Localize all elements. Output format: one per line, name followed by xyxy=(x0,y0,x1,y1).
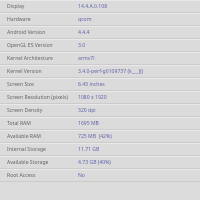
staticText: Hardware xyxy=(7,16,31,23)
button[interactable]: Screen Density xyxy=(0,104,200,117)
staticText: 6.45 inches xyxy=(78,81,105,88)
staticText: Android Version xyxy=(7,29,46,36)
button[interactable]: Screen Size xyxy=(0,78,200,91)
staticText: Screen Size xyxy=(7,81,34,88)
button[interactable]: Kernel Version xyxy=(0,65,200,78)
staticText: qcom xyxy=(78,16,92,23)
staticText: Kernel Version xyxy=(7,68,42,75)
button[interactable]: Android Version xyxy=(0,26,200,39)
staticText: OpenGL ES Version xyxy=(7,42,53,49)
staticText: 1695 MB xyxy=(78,120,99,127)
staticText: Screen Resolution (pixels) xyxy=(7,94,68,101)
staticText: Screen Density xyxy=(7,107,43,114)
staticText: No xyxy=(78,172,85,179)
staticText: Display xyxy=(7,3,25,10)
staticText: 4.4.4 xyxy=(78,29,90,36)
staticText: Total RAM xyxy=(7,120,31,127)
staticText: Kernel Architecture xyxy=(7,55,53,62)
button[interactable]: OpenGL ES Version xyxy=(0,39,200,52)
staticText: 11.71 GB xyxy=(78,146,100,153)
button[interactable]: Available RAM xyxy=(0,130,200,143)
staticText: 4.73 GB (40%) xyxy=(78,159,111,166)
staticText: Available Storage xyxy=(7,159,49,166)
button[interactable]: Display xyxy=(0,0,200,13)
button[interactable]: Total RAM xyxy=(0,117,200,130)
button[interactable]: Screen Resolution (pixels) xyxy=(0,91,200,104)
staticText: 320 dpi xyxy=(78,107,96,114)
staticText: 3.4.0-perf-g0109737 (k___)() xyxy=(78,68,144,75)
staticText: Available RAM xyxy=(7,133,41,140)
staticText: armv7l xyxy=(78,55,95,62)
button[interactable]: Hardware xyxy=(0,13,200,26)
staticText: 725 MB (42%) xyxy=(78,133,112,140)
staticText: Root Access xyxy=(7,172,36,179)
staticText: 3.0 xyxy=(78,42,86,49)
staticText: Internal Storage xyxy=(7,146,46,153)
button[interactable]: Available Storage xyxy=(0,156,200,169)
button[interactable]: Internal Storage xyxy=(0,143,200,156)
staticText: 14.4.A.0.108 xyxy=(78,3,108,10)
button[interactable]: Root Access xyxy=(0,169,200,182)
button[interactable]: Kernel Architecture xyxy=(0,52,200,65)
staticText: 1080 x 1920 xyxy=(78,94,107,101)
